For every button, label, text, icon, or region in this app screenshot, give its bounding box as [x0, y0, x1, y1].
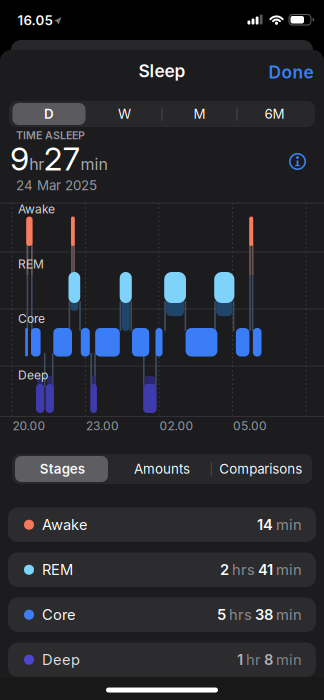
button[interactable]: REM: [8, 552, 316, 587]
button[interactable]: Awake: [8, 507, 316, 542]
button[interactable]: Core: [8, 597, 316, 632]
staticText: 27: [44, 140, 80, 178]
staticText: D: [44, 106, 54, 122]
staticText: 05.00: [233, 419, 267, 433]
staticText: hr: [246, 651, 261, 668]
staticText: 9: [10, 140, 29, 178]
staticText: Comparisons: [219, 461, 302, 477]
staticText: TIME ASLEEP: [16, 129, 85, 142]
staticText: REM: [18, 257, 44, 271]
button[interactable]: Amounts: [113, 454, 211, 484]
staticText: 16.05: [17, 13, 52, 28]
staticText: Done: [268, 62, 313, 82]
staticText: 38: [255, 606, 273, 623]
staticText: 6M: [264, 106, 284, 122]
staticText: 41: [258, 561, 273, 578]
staticText: 02.00: [159, 419, 193, 433]
staticText: Awake: [18, 202, 55, 216]
button[interactable]: Deep: [8, 642, 316, 677]
button[interactable]: D: [11, 101, 86, 127]
staticText: min: [276, 561, 302, 578]
staticText: W: [118, 106, 131, 122]
staticText: Deep: [42, 651, 80, 668]
staticText: Deep: [18, 368, 48, 382]
staticText: Stages: [40, 461, 85, 477]
staticText: 5: [217, 606, 226, 623]
staticText: Awake: [42, 516, 88, 533]
staticText: REM: [42, 561, 73, 578]
staticText: min: [276, 606, 302, 623]
staticText: Core: [18, 311, 45, 326]
staticText: Amounts: [134, 461, 190, 477]
staticText: 2: [220, 561, 229, 578]
staticText: 1: [237, 651, 243, 668]
staticText: min: [276, 651, 302, 668]
button[interactable]: Done: [268, 62, 313, 82]
staticText: Core: [42, 606, 76, 623]
staticText: hr: [29, 155, 44, 174]
button[interactable]: 6M: [237, 101, 312, 127]
staticText: hrs: [232, 561, 255, 578]
button[interactable]: Comparisons: [212, 454, 310, 484]
staticText: 14: [257, 516, 273, 533]
staticText: 24 Mar 2025: [16, 177, 97, 193]
staticText: 8: [264, 651, 273, 668]
staticText: M: [193, 106, 205, 122]
staticText: min: [80, 155, 107, 174]
button[interactable]: M: [162, 101, 237, 127]
button[interactable]: Stages: [13, 454, 111, 484]
staticText: Sleep: [138, 61, 185, 81]
staticText: 20.00: [12, 419, 45, 433]
button[interactable]: More info: [289, 153, 306, 170]
button[interactable]: W: [87, 101, 162, 127]
staticText: hrs: [229, 606, 252, 623]
staticText: min: [276, 516, 302, 533]
staticText: 23.00: [86, 419, 119, 433]
